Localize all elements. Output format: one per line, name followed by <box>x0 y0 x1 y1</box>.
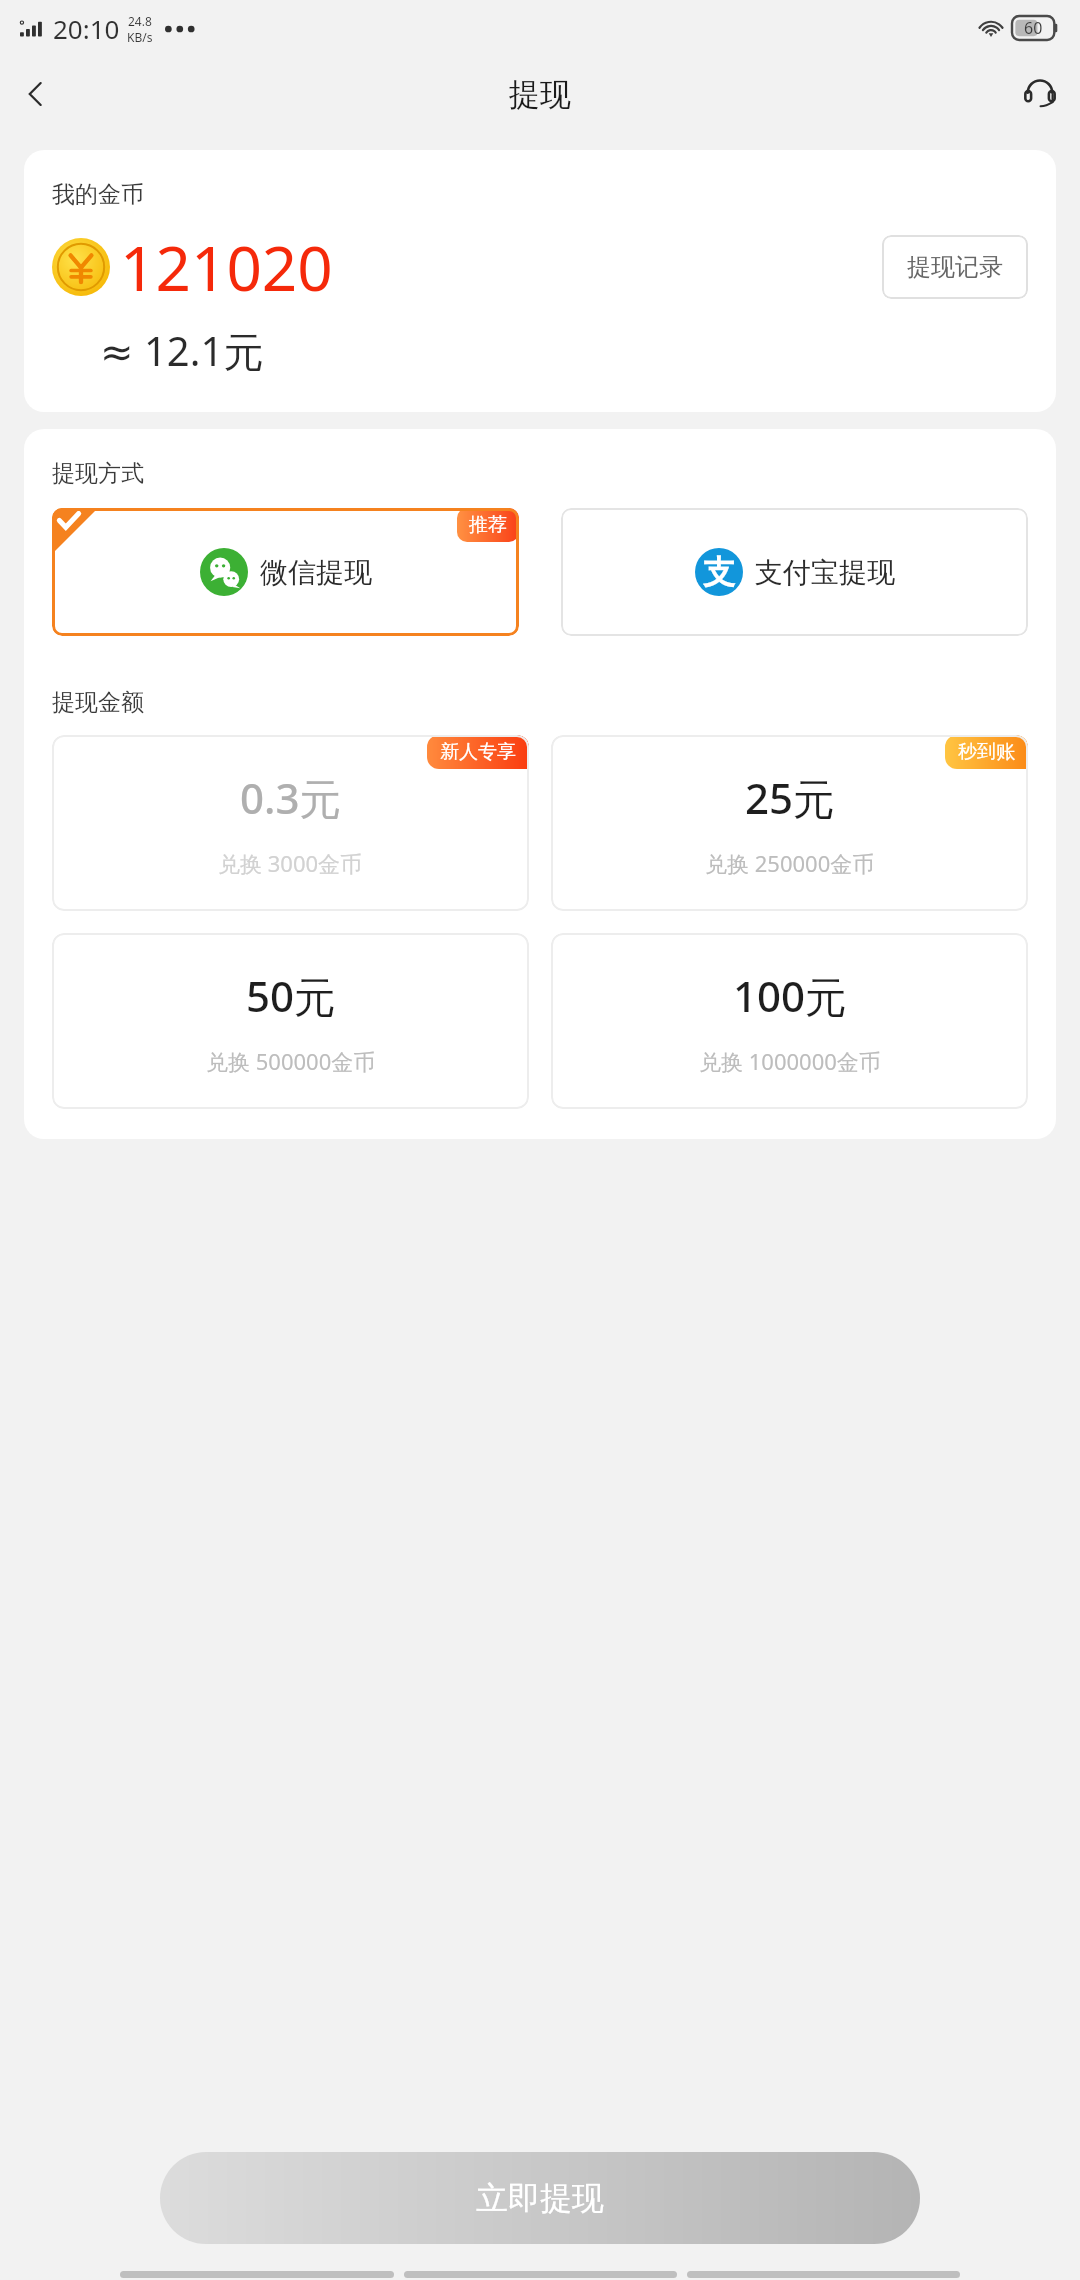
button[interactable]: 立即提现 <box>160 2152 920 2244</box>
button[interactable]: Back <box>8 66 64 122</box>
staticText: 24.8 <box>128 13 152 29</box>
staticText: 兑换 1000000金币 <box>699 1046 881 1076</box>
button[interactable]: 新人专享 <box>52 735 529 911</box>
button[interactable]: 秒到账 <box>551 735 1028 911</box>
staticText: 兑换 500000金币 <box>206 1046 376 1076</box>
staticText: 微信提现 <box>260 555 372 590</box>
staticText: 秒到账 <box>958 740 1015 764</box>
staticText: 立即提现 <box>476 2178 604 2218</box>
staticText: 提现记录 <box>907 252 1003 282</box>
staticText: 25元 <box>745 769 836 826</box>
staticText: 60 <box>1024 17 1043 39</box>
button[interactable]: 提现记录 <box>882 235 1028 299</box>
button[interactable]: Customer service <box>1012 66 1068 122</box>
staticText: 支付宝提现 <box>755 555 895 590</box>
staticText: 推荐 <box>469 513 507 537</box>
button[interactable]: 100元 <box>551 933 1028 1109</box>
staticText: 121020 <box>120 225 333 309</box>
staticText: 兑换 3000金币 <box>218 848 363 878</box>
staticText: 提现方式 <box>52 459 144 488</box>
staticText: KB/s <box>127 29 153 45</box>
staticText: 20:10 <box>53 11 120 46</box>
staticText: 100元 <box>733 967 848 1024</box>
staticText: 50元 <box>246 967 337 1024</box>
staticText: 提现金额 <box>52 688 144 717</box>
staticText: 兑换 250000金币 <box>705 848 875 878</box>
staticText: 新人专享 <box>440 740 516 764</box>
button[interactable]: 推荐 <box>52 508 519 636</box>
staticText: ≈ 12.1元 <box>100 323 264 378</box>
staticText: 0.3元 <box>240 769 342 826</box>
staticText: 支 <box>703 552 735 592</box>
staticText: 我的金币 <box>52 180 144 209</box>
button[interactable]: 50元 <box>52 933 529 1109</box>
button[interactable]: 支 <box>561 508 1028 636</box>
staticText: 提现 <box>509 75 571 114</box>
